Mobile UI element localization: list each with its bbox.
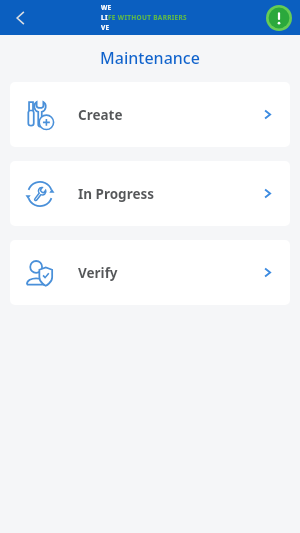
button[interactable]: Alerts bbox=[265, 4, 293, 32]
staticText: FE WITHOUT BARRIERS bbox=[108, 13, 187, 22]
button[interactable]: Verify bbox=[10, 240, 290, 305]
staticText: Maintenance bbox=[0, 47, 300, 69]
staticText: WE bbox=[101, 3, 112, 12]
staticText: Verify bbox=[78, 264, 118, 282]
button[interactable]: Create bbox=[10, 82, 290, 147]
staticText: Create bbox=[78, 106, 123, 124]
button[interactable]: In Progress bbox=[10, 161, 290, 226]
staticText: VE bbox=[101, 23, 110, 32]
button[interactable]: Back bbox=[0, 0, 42, 35]
staticText: In Progress bbox=[78, 185, 155, 203]
staticText: LI bbox=[101, 13, 108, 22]
